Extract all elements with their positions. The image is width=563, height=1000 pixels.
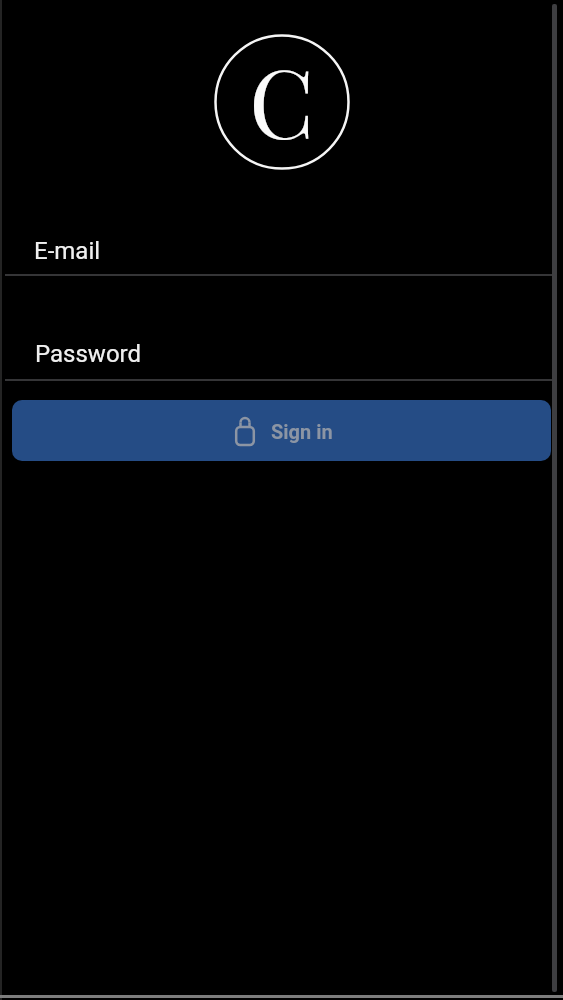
staticText: Password bbox=[35, 340, 142, 368]
staticText: E-mail bbox=[34, 237, 101, 265]
button[interactable]: Password bbox=[0, 329, 563, 357]
button[interactable]: Sign in bbox=[12, 400, 551, 461]
staticText: C bbox=[249, 36, 315, 163]
staticText: Sign in bbox=[271, 420, 333, 443]
button[interactable]: E-mail bbox=[0, 225, 563, 253]
